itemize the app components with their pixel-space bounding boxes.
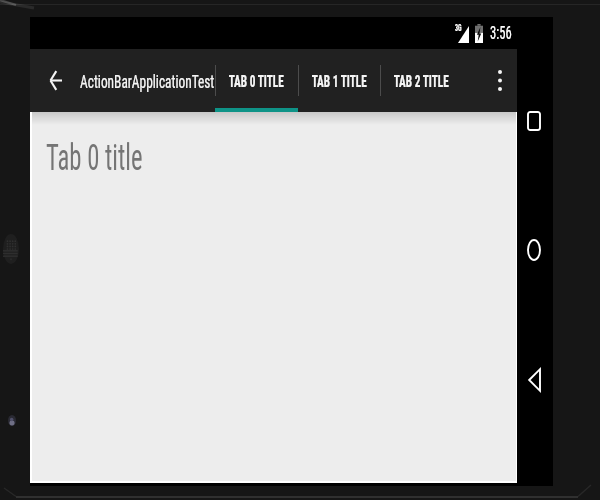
staticText: 3:56 [490, 22, 512, 44]
button[interactable]: Home [517, 230, 553, 270]
staticText: TAB 1 TITLE [312, 71, 367, 91]
staticText: TAB 2 TITLE [394, 71, 449, 91]
button[interactable]: TAB 0 TITLE [215, 49, 298, 112]
staticText: 3G [455, 23, 462, 33]
button[interactable]: Back [517, 360, 553, 400]
button[interactable]: TAB 1 TITLE [298, 49, 380, 112]
staticText: Tab 0 title [46, 137, 143, 179]
button[interactable]: Navigate up [35, 49, 76, 112]
staticText: ActionBarApplicationTest [80, 70, 214, 92]
button[interactable]: More options [481, 49, 519, 112]
button[interactable]: TAB 2 TITLE [380, 49, 463, 112]
staticText: TAB 0 TITLE [229, 71, 284, 91]
button[interactable]: Recent apps [517, 101, 553, 141]
